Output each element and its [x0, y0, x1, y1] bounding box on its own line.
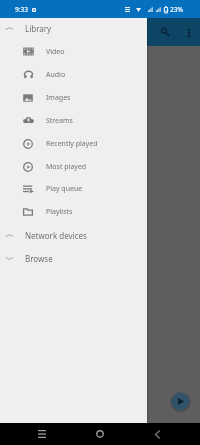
button[interactable]: Browse — [0, 247, 147, 270]
button[interactable]: Images — [0, 86, 147, 109]
staticText: Streams — [46, 116, 73, 126]
button[interactable]: Video — [0, 40, 147, 63]
staticText: Most played — [46, 162, 87, 172]
button[interactable]: Back — [147, 424, 167, 444]
button[interactable]: Audio — [0, 63, 147, 86]
button[interactable]: Library — [0, 17, 147, 40]
staticText: 23% — [170, 5, 184, 14]
button[interactable]: More options — [177, 21, 200, 44]
button[interactable]: Recents — [32, 424, 52, 444]
staticText: Images — [46, 93, 71, 103]
button[interactable]: Streams — [0, 109, 147, 132]
button[interactable]: Play — [170, 391, 191, 412]
staticText: Library — [25, 23, 52, 34]
staticText: Play queue — [46, 184, 83, 194]
button[interactable]: Most played — [0, 155, 147, 178]
button[interactable]: Home — [90, 424, 110, 444]
button[interactable]: Network devices — [0, 224, 147, 247]
staticText: Recently played — [46, 139, 98, 149]
button[interactable]: Search — [153, 20, 177, 44]
staticText: Browse — [25, 253, 53, 264]
staticText: Audio — [46, 70, 66, 80]
button[interactable]: Play queue — [0, 177, 147, 200]
button[interactable]: Recently played — [0, 132, 147, 155]
staticText: Network devices — [25, 230, 87, 241]
staticText: Playlists — [46, 207, 73, 217]
button[interactable]: Playlists — [0, 200, 147, 223]
staticText: 9:33 — [15, 5, 29, 14]
staticText: Video — [46, 47, 65, 57]
